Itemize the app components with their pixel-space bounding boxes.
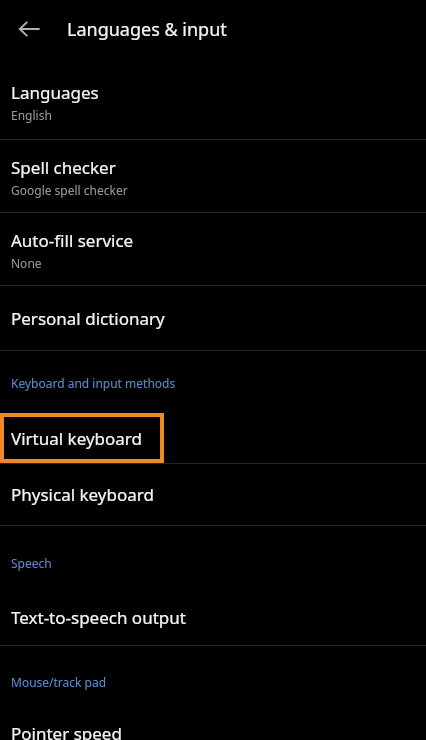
button[interactable]: Languages [0, 66, 426, 139]
button[interactable]: Back [8, 8, 50, 50]
staticText: Personal dictionary [11, 307, 165, 330]
staticText: Languages & input [67, 17, 227, 42]
button[interactable]: Physical keyboard [0, 464, 426, 525]
button[interactable]: Personal dictionary [0, 286, 426, 350]
button[interactable]: Spell checker [0, 140, 426, 212]
staticText: Spell checker [11, 156, 116, 179]
staticText: Physical keyboard [11, 483, 154, 506]
button[interactable]: Text-to-speech output [0, 590, 426, 645]
staticText: English [11, 107, 52, 123]
staticText: Mouse/track pad [11, 674, 107, 690]
staticText: None [11, 255, 42, 271]
staticText: Virtual keyboard [11, 427, 143, 450]
button[interactable]: Virtual keyboard [0, 413, 164, 463]
staticText: Languages [11, 81, 99, 104]
staticText: Google spell checker [11, 182, 128, 198]
staticText: Speech [11, 555, 52, 571]
button[interactable]: Pointer speed [0, 710, 426, 740]
button[interactable]: Auto-fill service [0, 213, 426, 285]
staticText: Keyboard and input methods [11, 375, 176, 391]
staticText: Auto-fill service [11, 229, 134, 252]
staticText: Text-to-speech output [11, 606, 186, 629]
staticText: Pointer speed [11, 722, 122, 740]
